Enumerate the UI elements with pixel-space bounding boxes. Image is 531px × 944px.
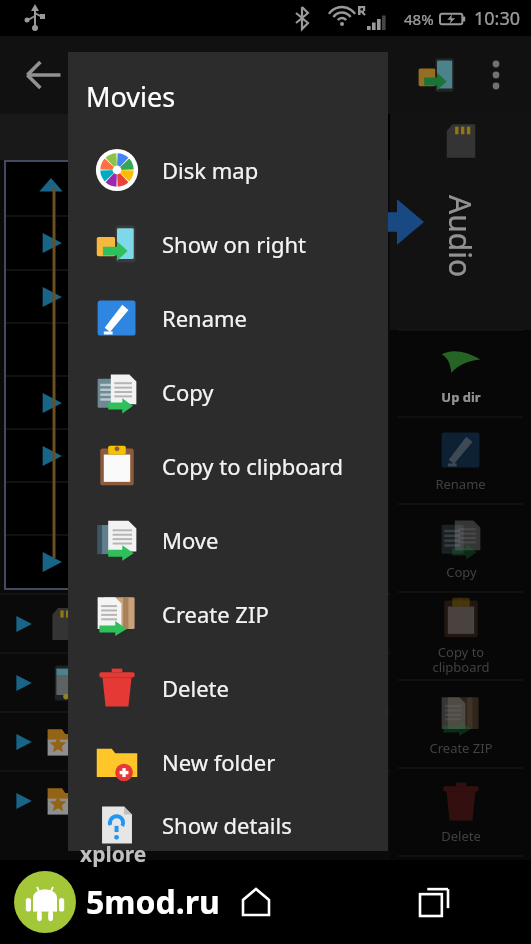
staticText: New folder [425,915,497,933]
button[interactable] [6,429,384,482]
button[interactable]: Home [234,880,278,924]
button[interactable] [6,535,384,588]
button[interactable]: Delete [68,651,388,725]
staticText: 10:30 [474,6,521,31]
button[interactable]: Show on right [411,49,463,101]
button[interactable]: Rename [68,281,388,355]
staticText: Copy to clipboard [162,451,344,481]
staticText: Create ZIP [429,739,493,757]
button[interactable]: /11 GB [0,653,390,712]
button[interactable] [6,216,384,270]
button[interactable]: Show details [68,799,388,851]
button[interactable] [6,482,384,535]
button[interactable]: Copy to clipboard [390,592,531,680]
staticText: Rename [162,303,248,333]
staticText: 5mod.ru [86,880,220,924]
staticText: Rename [435,475,486,493]
button[interactable]: Delete [390,768,531,856]
button[interactable]: New folder [68,725,388,799]
button[interactable]: More options [475,54,517,96]
button[interactable] [0,771,390,830]
button[interactable]: Copy [68,355,388,429]
button[interactable] [0,712,390,771]
button[interactable]: Copy to clipboard [68,429,388,503]
staticText: 48% [404,9,434,29]
staticText: New folder [162,747,276,777]
staticText: Disk map [162,155,259,185]
button[interactable] [6,323,384,376]
button[interactable]: Disk map [68,133,388,207]
staticText: Move [162,525,219,555]
button[interactable] [6,376,384,429]
staticText: Copy [162,377,214,407]
button[interactable]: Create ZIP [390,680,531,768]
staticText: Show on right [162,229,307,259]
button[interactable] [6,270,384,323]
staticText: Create ZIP [162,599,269,629]
staticText: xplore [80,840,147,869]
button[interactable]: Show on right [68,207,388,281]
button[interactable]: Rename [390,417,531,504]
button[interactable]: Create ZIP [68,577,388,651]
button[interactable]: Copy [390,504,531,592]
staticText: Up dir [441,388,481,406]
button[interactable]: Back [20,52,66,98]
staticText: Copy [446,563,477,581]
button[interactable]: New folder [390,856,531,944]
button[interactable]: Recents [411,879,457,925]
staticText: Show details [162,810,292,840]
button[interactable]: Up dir [390,330,531,417]
button[interactable] [6,162,384,216]
staticText: Movies [86,78,176,115]
staticText: Delete [162,673,229,703]
staticText: Audio [440,195,481,278]
button[interactable]: Move [68,503,388,577]
staticText: Delete [441,827,481,845]
staticText: Copy to clipboard [432,643,490,676]
button[interactable]: /58 GB [0,594,390,653]
